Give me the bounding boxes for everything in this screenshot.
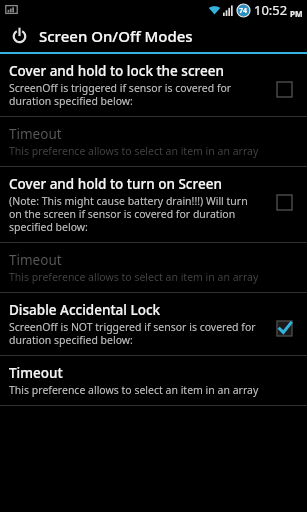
button[interactable]: Power — [0, 19, 307, 52]
staticText: Cover and hold to turn on Screen — [9, 175, 222, 193]
staticText: Screen On/Off Modes — [39, 26, 193, 46]
staticText: This preference allows to select an item… — [9, 144, 259, 158]
button[interactable]: Toggle Cover and hold to lock the screen — [269, 74, 299, 104]
button[interactable]: Toggle Disable Accidental Lock — [269, 313, 299, 343]
staticText: ScreenOff is NOT triggered if sensor is … — [9, 320, 263, 347]
button[interactable]: Timeout — [0, 356, 307, 405]
staticText: Timeout — [9, 251, 62, 269]
button[interactable]: Toggle Cover and hold to turn on Screen — [269, 187, 299, 217]
staticText: Cover and hold to lock the screen — [9, 62, 224, 80]
staticText: 10:52 — [254, 1, 288, 19]
button[interactable]: Timeout — [0, 117, 307, 166]
staticText: (Note: This might cause battery drain!!!… — [9, 194, 263, 234]
staticText: PM — [290, 8, 303, 19]
button[interactable]: Cover and hold to lock the screen — [0, 54, 307, 116]
staticText: 74 — [239, 6, 248, 16]
button[interactable]: Disable Accidental Lock — [0, 293, 307, 355]
staticText: Disable Accidental Lock — [9, 301, 161, 319]
staticText: Timeout — [9, 125, 62, 143]
staticText: Timeout — [9, 364, 63, 382]
staticText: This preference allows to select an item… — [9, 270, 259, 284]
button[interactable]: Timeout — [0, 243, 307, 292]
staticText: This preference allows to select an item… — [9, 383, 259, 397]
other: Power — [11, 27, 28, 44]
button[interactable]: Cover and hold to turn on Screen — [0, 167, 307, 242]
staticText: ScreenOff is triggered if sensor is cove… — [9, 81, 263, 108]
